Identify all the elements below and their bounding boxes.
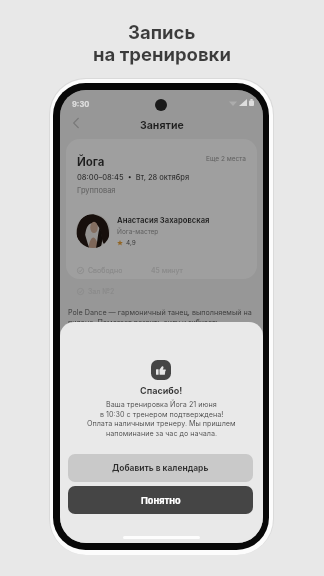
staticText: Йога-мастер	[117, 228, 159, 236]
staticText: Групповая	[77, 186, 116, 195]
button[interactable]: Добавить в календарь	[68, 454, 253, 482]
staticText: 08:00–08:45 • Вт, 28 октября	[77, 173, 190, 182]
staticText: в 10:30 с тренером подтверждена!	[100, 410, 224, 419]
staticText: Свободно	[88, 266, 123, 274]
staticText: Анастасия Захаровская	[117, 216, 210, 225]
staticText: Запись	[128, 21, 196, 43]
staticText: 4,9	[126, 239, 136, 247]
staticText: Ваша тренировка Йога 21 июня	[106, 400, 217, 409]
staticText: Зал №2	[88, 287, 115, 295]
staticText: Оплата наличными тренеру. Мы пришлем	[87, 419, 236, 428]
staticText: 45 минут	[151, 266, 183, 274]
button[interactable]	[66, 139, 257, 279]
staticText: на тренировки	[93, 43, 231, 65]
staticText: Спасибо!	[140, 385, 183, 396]
staticText: Понятно	[141, 495, 181, 506]
staticText: напоминание за час до начала.	[106, 429, 218, 438]
staticText: Занятие	[140, 119, 184, 132]
staticText: Добавить в календарь	[112, 463, 209, 473]
button[interactable]: Back	[67, 114, 85, 132]
button[interactable]: Понятно	[68, 486, 253, 514]
button[interactable]: Анастасия Захаровская	[76, 214, 248, 248]
staticText: Йога	[77, 155, 105, 169]
staticText: Pole Dance — гармоничный танец, выполняе…	[68, 308, 258, 327]
staticText: Еще 2 места	[206, 155, 246, 163]
staticText: 9:30	[72, 100, 90, 109]
